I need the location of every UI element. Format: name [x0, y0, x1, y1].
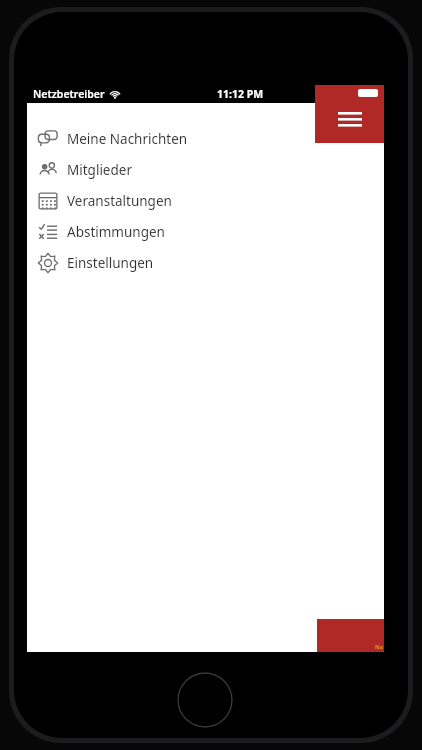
staticText: Meine Nachrichten — [67, 130, 188, 148]
button[interactable]: Na — [317, 619, 384, 652]
staticText: 11:12 PM — [217, 87, 264, 101]
staticText: Mitglieder — [67, 161, 132, 179]
button[interactable]: Einstellungen — [27, 247, 384, 278]
button[interactable]: Abstimmungen — [27, 216, 384, 247]
staticText: Na — [375, 643, 383, 650]
staticText: Abstimmungen — [67, 223, 165, 241]
button[interactable]: Menu — [315, 85, 384, 143]
button[interactable]: Veranstaltungen — [27, 185, 384, 216]
staticText: Veranstaltungen — [67, 192, 172, 210]
button[interactable]: Meine Nachrichten — [27, 123, 384, 154]
button[interactable]: Mitglieder — [27, 154, 384, 185]
staticText: Netzbetreiber — [33, 87, 105, 101]
staticText: Einstellungen — [67, 254, 154, 272]
